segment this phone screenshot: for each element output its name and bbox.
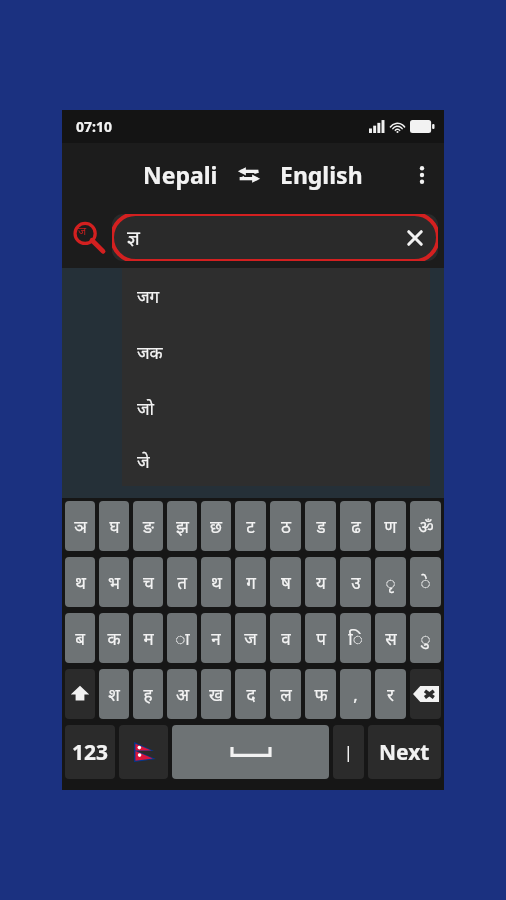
button[interactable]: ढ	[340, 501, 371, 551]
button[interactable]: स	[375, 613, 406, 663]
button[interactable]: प	[305, 613, 336, 663]
button[interactable]: े	[410, 557, 441, 607]
button[interactable]: ट	[235, 501, 266, 551]
button[interactable]: 123	[65, 725, 115, 779]
button[interactable]: ह	[133, 669, 163, 719]
staticText: ब	[75, 627, 85, 650]
staticText: झ	[176, 515, 189, 538]
button[interactable]: ु	[410, 613, 441, 663]
button[interactable]: च	[133, 557, 163, 607]
button[interactable]: ॐ	[410, 501, 441, 551]
staticText: े	[420, 571, 431, 594]
button[interactable]: Search language	[70, 219, 106, 255]
button[interactable]: र	[375, 669, 406, 719]
staticText: ठ	[281, 515, 291, 538]
staticText: च	[143, 571, 154, 594]
button[interactable]: ड	[305, 501, 336, 551]
button[interactable]: |	[333, 725, 364, 779]
button[interactable]: ृ	[375, 557, 406, 607]
button[interactable]: क	[99, 613, 129, 663]
staticText: ग	[246, 571, 256, 594]
button[interactable]: ब	[65, 613, 95, 663]
button[interactable]: ल	[270, 669, 301, 719]
staticText: न	[211, 627, 221, 650]
staticText: ु	[420, 627, 431, 650]
staticText: ड	[316, 515, 326, 538]
staticText: जो	[137, 397, 155, 420]
staticText: ा	[175, 627, 190, 650]
staticText: |	[344, 741, 353, 763]
staticText: Next	[379, 738, 430, 767]
staticText: य	[316, 571, 326, 594]
button[interactable]: ग	[235, 557, 266, 607]
button[interactable]: Change language	[119, 725, 168, 779]
staticText: जग	[137, 285, 160, 308]
staticText: र	[387, 683, 394, 706]
button[interactable]: ज	[235, 613, 266, 663]
staticText: जक	[137, 341, 163, 364]
button[interactable]: Clear	[402, 225, 428, 251]
staticText: थ	[75, 571, 86, 594]
staticText: ृ	[385, 571, 396, 594]
staticText: ख	[209, 683, 223, 706]
button[interactable]: ष	[270, 557, 301, 607]
staticText: त	[177, 571, 187, 594]
button[interactable]: य	[305, 557, 336, 607]
button[interactable]: जो	[122, 380, 430, 436]
button[interactable]: Shift	[65, 669, 95, 719]
button[interactable]: भ	[99, 557, 129, 607]
button[interactable]: न	[201, 613, 231, 663]
staticText: भ	[108, 571, 120, 594]
button[interactable]: त	[167, 557, 197, 607]
button[interactable]: Space	[172, 725, 329, 779]
staticText: जे	[137, 450, 150, 473]
staticText: उ	[351, 571, 361, 594]
button[interactable]: Next	[368, 725, 441, 779]
button[interactable]: झ	[167, 501, 197, 551]
staticText: ज्ञ	[127, 224, 140, 251]
button[interactable]: फ	[305, 669, 336, 719]
button[interactable]: More options	[404, 155, 444, 195]
button[interactable]: ण	[375, 501, 406, 551]
button[interactable]: म	[133, 613, 163, 663]
staticText: 123	[72, 738, 109, 767]
staticText: क	[107, 627, 121, 650]
staticText: ल	[280, 683, 292, 706]
staticText: ज	[78, 223, 87, 238]
button[interactable]: श	[99, 669, 129, 719]
button[interactable]: थ	[201, 557, 231, 607]
button[interactable]: ज्ञ	[112, 214, 438, 261]
button[interactable]: ठ	[270, 501, 301, 551]
staticText: ट	[246, 515, 255, 538]
button[interactable]: छ	[201, 501, 231, 551]
button[interactable]: ङ	[133, 501, 163, 551]
button[interactable]: अ	[167, 669, 197, 719]
button[interactable]: ञ	[65, 501, 95, 551]
button[interactable]: द	[235, 669, 266, 719]
button[interactable]: ि	[340, 613, 371, 663]
button[interactable]: Swap languages	[236, 162, 262, 188]
staticText: ण	[384, 515, 397, 538]
staticText: द	[246, 683, 256, 706]
button[interactable]: थ	[65, 557, 95, 607]
button[interactable]: व	[270, 613, 301, 663]
button[interactable]: जग	[122, 268, 430, 324]
staticText: ष	[281, 571, 291, 594]
staticText: थ	[211, 571, 222, 594]
button[interactable]: Backspace	[410, 669, 441, 719]
button[interactable]: ,	[340, 669, 371, 719]
button[interactable]: जक	[122, 324, 430, 380]
staticText: स	[385, 627, 397, 650]
button[interactable]: उ	[340, 557, 371, 607]
staticText: छ	[210, 515, 222, 538]
staticText: घ	[109, 515, 120, 538]
button[interactable]: ा	[167, 613, 197, 663]
button[interactable]: जे	[122, 436, 430, 486]
button[interactable]: Nepali	[139, 155, 222, 194]
staticText: म	[143, 627, 154, 650]
staticText: ज	[244, 627, 257, 650]
staticText: English	[280, 159, 363, 190]
button[interactable]: घ	[99, 501, 129, 551]
button[interactable]: ख	[201, 669, 231, 719]
button[interactable]: English	[276, 155, 367, 194]
